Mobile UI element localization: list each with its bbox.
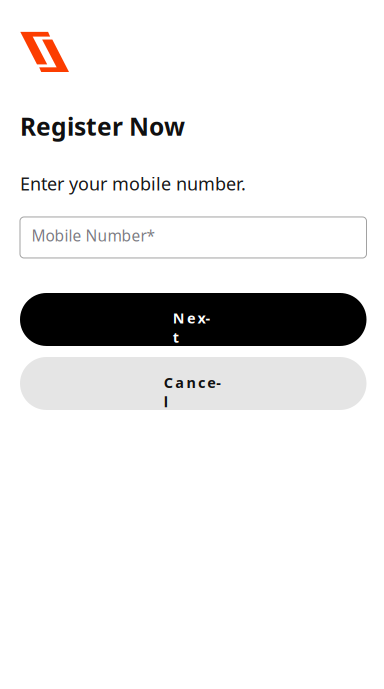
- button[interactable]: Next: [20, 293, 366, 346]
- staticText: Cancel: [164, 373, 223, 392]
- staticText: Mobile Number*: [31, 225, 155, 246]
- staticText: Next: [173, 308, 214, 327]
- staticText: Enter your mobile number.: [20, 172, 246, 195]
- staticText: Register Now: [20, 110, 185, 143]
- button[interactable]: Cancel: [20, 357, 366, 410]
